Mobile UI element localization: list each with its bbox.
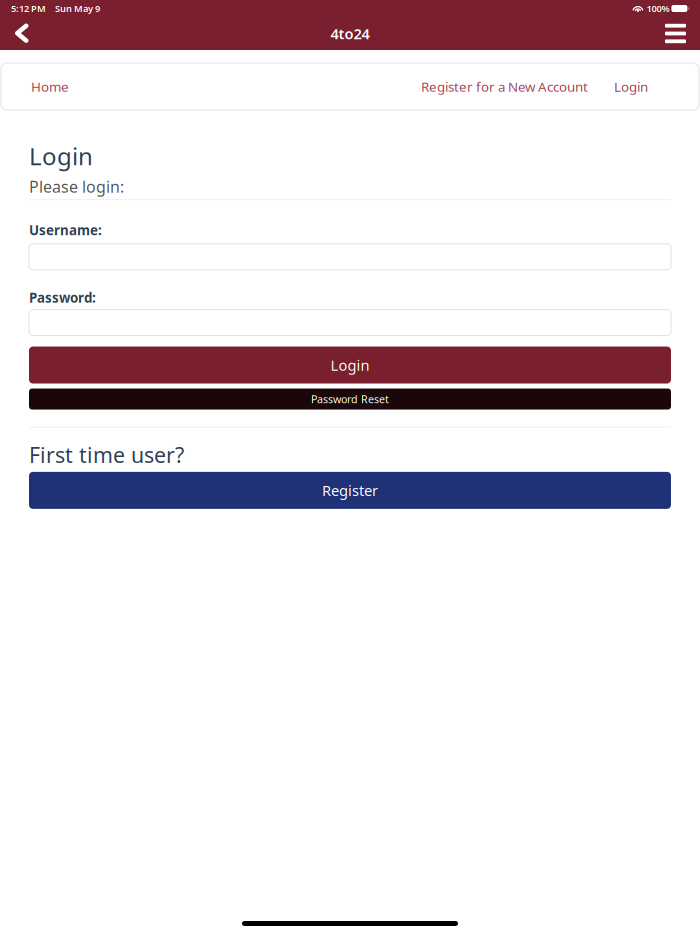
button[interactable]: Login bbox=[29, 346, 671, 383]
staticText: 5:12 PM bbox=[11, 2, 46, 15]
button[interactable]: Menu bbox=[642, 17, 686, 50]
staticText: Password Reset bbox=[311, 392, 389, 406]
staticText: Login bbox=[330, 355, 369, 375]
button[interactable]: Home bbox=[19, 64, 81, 109]
button[interactable]: Register bbox=[29, 472, 671, 509]
button[interactable]: Login bbox=[602, 64, 660, 109]
staticText: 100% bbox=[646, 2, 669, 15]
staticText: Login bbox=[614, 78, 648, 95]
button[interactable]: Register for a New Account bbox=[409, 64, 600, 109]
button[interactable]: Password Reset bbox=[29, 388, 671, 409]
staticText: Please login: bbox=[29, 176, 124, 197]
staticText: Register bbox=[322, 481, 378, 500]
staticText: Home bbox=[31, 78, 69, 95]
staticText: Password: bbox=[29, 289, 96, 306]
staticText: 4to24 bbox=[330, 24, 369, 43]
staticText: First time user? bbox=[29, 440, 184, 469]
button[interactable]: Back bbox=[15, 17, 59, 50]
staticText: Sun May 9 bbox=[55, 2, 100, 15]
button[interactable]: Username bbox=[29, 244, 671, 270]
staticText: Username: bbox=[29, 221, 102, 239]
staticText: Register for a New Account bbox=[421, 78, 588, 95]
button[interactable]: Password bbox=[29, 309, 671, 335]
staticText: Login bbox=[29, 140, 93, 172]
